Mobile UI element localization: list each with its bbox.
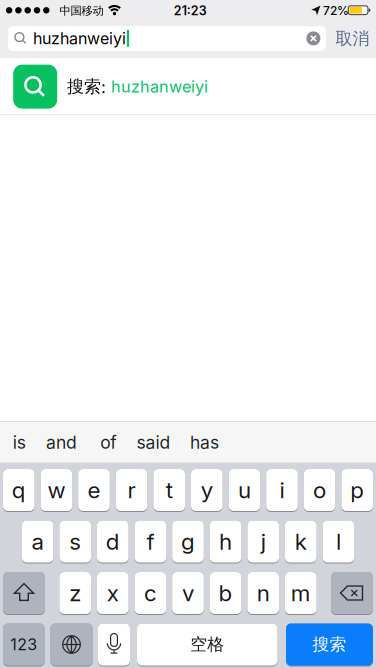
staticText: k <box>295 528 307 555</box>
button[interactable]: a <box>22 520 53 563</box>
button[interactable]: e <box>78 469 110 512</box>
staticText: v <box>182 579 194 607</box>
button[interactable]: 搜索: <box>0 58 376 114</box>
button[interactable]: y <box>191 469 223 512</box>
button[interactable]: Clear text <box>306 31 320 45</box>
staticText: 72% <box>323 3 349 18</box>
staticText: 取消 <box>335 28 369 49</box>
button[interactable]: 123 <box>3 623 44 666</box>
staticText: huzhanweiyi <box>33 29 126 48</box>
staticText: b <box>219 579 233 607</box>
staticText: l <box>336 528 341 555</box>
staticText: x <box>107 579 119 607</box>
button[interactable]: said <box>136 432 170 453</box>
button[interactable]: 搜索 <box>286 623 373 666</box>
staticText: e <box>87 476 100 504</box>
button[interactable]: f <box>135 520 166 563</box>
button[interactable]: of <box>100 432 116 453</box>
staticText: 空格 <box>190 634 224 655</box>
staticText: z <box>69 579 81 607</box>
staticText: g <box>181 528 195 555</box>
button[interactable]: j <box>247 520 279 563</box>
button[interactable]: o <box>304 469 335 512</box>
staticText: of <box>100 432 116 453</box>
button[interactable]: 取消 <box>335 28 369 49</box>
staticText: t <box>166 476 173 504</box>
button[interactable]: t <box>153 469 185 512</box>
button[interactable]: d <box>97 520 129 563</box>
button[interactable]: g <box>172 520 204 563</box>
staticText: has <box>190 432 219 453</box>
button[interactable]: b <box>210 572 241 615</box>
staticText: and <box>46 432 77 453</box>
staticText: huzhanweiyi <box>111 77 208 96</box>
staticText: h <box>219 528 232 555</box>
button[interactable]: p <box>341 469 373 512</box>
button[interactable]: l <box>323 520 354 563</box>
staticText: o <box>313 476 326 504</box>
staticText: 21:23 <box>174 3 207 18</box>
staticText: y <box>201 476 213 504</box>
button[interactable]: z <box>59 572 91 615</box>
button[interactable]: m <box>285 572 317 615</box>
button[interactable]: x <box>97 572 129 615</box>
staticText: c <box>144 579 157 607</box>
staticText: 搜索 <box>312 634 346 655</box>
staticText: 中国移动 <box>59 4 103 18</box>
staticText: said <box>136 432 170 453</box>
staticText: d <box>106 528 120 555</box>
staticText: n <box>257 579 270 607</box>
button[interactable]: c <box>135 572 166 615</box>
button[interactable]: i <box>266 469 298 512</box>
staticText: 搜索: <box>67 76 111 97</box>
staticText: s <box>69 528 81 555</box>
staticText: is <box>13 432 26 453</box>
button[interactable]: Shift <box>3 572 45 615</box>
button[interactable]: 空格 <box>137 623 277 666</box>
button[interactable]: Next keyboard <box>50 623 92 666</box>
button[interactable]: v <box>172 572 204 615</box>
staticText: w <box>47 476 65 504</box>
staticText: a <box>32 528 44 555</box>
staticText: f <box>146 528 154 555</box>
button[interactable]: q <box>3 469 35 512</box>
staticText: q <box>12 476 26 504</box>
button[interactable]: has <box>190 432 219 453</box>
button[interactable]: Search field <box>8 26 326 51</box>
button[interactable]: k <box>285 520 317 563</box>
staticText: r <box>128 476 136 504</box>
staticText: u <box>238 476 251 504</box>
button[interactable]: Dictation <box>98 623 130 666</box>
button[interactable]: r <box>116 469 147 512</box>
button[interactable]: u <box>229 469 260 512</box>
button[interactable]: s <box>59 520 91 563</box>
staticText: j <box>261 528 266 555</box>
button[interactable]: h <box>210 520 241 563</box>
button[interactable]: is <box>13 432 26 453</box>
staticText: m <box>291 579 311 607</box>
button[interactable]: Delete <box>331 572 373 615</box>
button[interactable]: w <box>41 469 72 512</box>
button[interactable]: and <box>46 432 77 453</box>
button[interactable]: n <box>247 572 279 615</box>
staticText: p <box>350 476 364 504</box>
staticText: i <box>279 476 284 504</box>
staticText: 123 <box>10 635 37 654</box>
